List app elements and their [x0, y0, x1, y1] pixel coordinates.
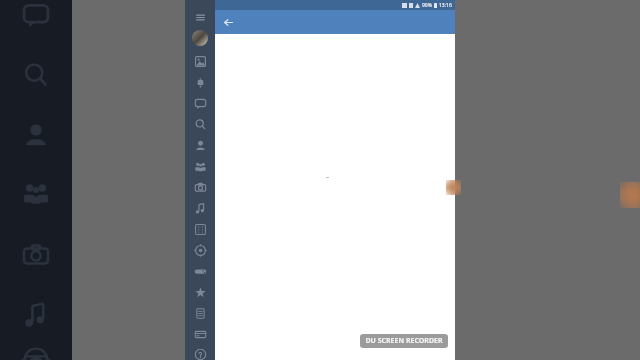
staticText: 90%	[422, 2, 432, 9]
button[interactable]: Favorites	[194, 286, 207, 299]
button[interactable]: Discover	[194, 244, 207, 257]
button[interactable]: Back	[220, 14, 236, 30]
staticText: DU SCREEN RECORDER	[365, 336, 443, 346]
button[interactable]: Music	[194, 202, 207, 215]
staticText: 13:16	[439, 2, 452, 9]
button[interactable]: Help	[194, 349, 207, 360]
button[interactable]: Menu	[194, 11, 207, 24]
button[interactable]: Friends	[194, 160, 207, 173]
button[interactable]: Search	[194, 118, 207, 131]
button[interactable]: Notifications	[194, 76, 207, 89]
button[interactable]: Camera	[194, 181, 207, 194]
button[interactable]: Messages	[194, 97, 207, 110]
button[interactable]: Cards	[194, 328, 207, 341]
button[interactable]: Profile	[192, 30, 208, 46]
button[interactable]: Profile	[194, 139, 207, 152]
button[interactable]: Photos	[194, 55, 207, 68]
button[interactable]: Apps	[194, 223, 207, 236]
button[interactable]: Games	[194, 265, 207, 278]
button[interactable]: Documents	[194, 307, 207, 320]
